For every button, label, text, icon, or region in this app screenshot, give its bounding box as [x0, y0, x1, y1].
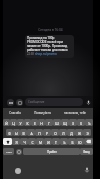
- staticText: Я: [15, 140, 18, 144]
- staticText: 22:38: [27, 52, 34, 56]
- staticText: Н: [40, 121, 43, 125]
- staticText: Сегодня в 16:04: [38, 28, 63, 32]
- staticText: В: [22, 131, 25, 135]
- staticText: Щ: [63, 121, 67, 125]
- button[interactable]: Б: [68, 138, 76, 145]
- staticText: Б: [71, 140, 74, 144]
- staticText: Пожалуйста: [34, 111, 51, 115]
- staticText: Ч: [23, 140, 26, 144]
- button[interactable]: Home: [15, 168, 21, 174]
- staticText: Пробел: [47, 150, 57, 154]
- staticText: К: [26, 121, 29, 125]
- staticText: Ввод: [83, 150, 90, 154]
- button[interactable]: Спасибо: [3, 108, 27, 118]
- staticText: Е: [34, 121, 36, 125]
- staticText: П: [38, 131, 41, 135]
- button[interactable]: Ю: [76, 138, 84, 145]
- button[interactable]: Д: [67, 129, 75, 136]
- button[interactable]: Пожалуйста: [27, 108, 57, 118]
- button[interactable]: Ь: [60, 138, 68, 145]
- button[interactable]: Пробел: [23, 148, 80, 155]
- button[interactable]: Gallery: [16, 99, 23, 106]
- staticText: Э: [86, 131, 89, 135]
- staticText: Промокод на 100р PROMOCODE на всё при за…: [27, 36, 72, 52]
- button[interactable]: Shift: [3, 138, 12, 145]
- button[interactable]: Е: [31, 119, 38, 126]
- staticText: shop.ru/promo: [35, 52, 57, 56]
- staticText: М: [39, 140, 42, 144]
- button[interactable]: Р: [43, 129, 51, 136]
- staticText: Спасибо: [9, 111, 21, 115]
- staticText: Ь: [63, 140, 66, 144]
- button[interactable]: В: [20, 129, 27, 136]
- button[interactable]: Backspace: [84, 138, 93, 145]
- staticText: И: [47, 140, 50, 144]
- button[interactable]: ?123: [3, 148, 14, 155]
- button[interactable]: Щ: [61, 119, 69, 126]
- button[interactable]: З: [69, 119, 77, 126]
- button[interactable]: Сообщение: [25, 98, 83, 106]
- button[interactable]: Ы: [13, 129, 20, 136]
- staticText: Ы: [15, 131, 18, 135]
- button[interactable]: Э: [83, 129, 91, 136]
- button[interactable]: Т: [52, 138, 60, 145]
- staticText: Ц: [12, 121, 15, 125]
- staticText: Ю: [78, 140, 82, 144]
- button[interactable]: Ф: [6, 129, 13, 136]
- button[interactable]: Camera: [7, 99, 14, 106]
- button[interactable]: Й: [3, 119, 10, 126]
- button[interactable]: Ш: [53, 119, 61, 126]
- button[interactable]: Промокод на 100р PROMOCODE на всё при за…: [25, 35, 74, 58]
- staticText: ?123: [6, 150, 12, 153]
- button[interactable]: Voice message: [85, 99, 92, 106]
- button[interactable]: Ц: [10, 119, 17, 126]
- button[interactable]: Х: [77, 119, 85, 126]
- button[interactable]: Ввод: [80, 148, 93, 155]
- button[interactable]: Г: [45, 119, 53, 126]
- staticText: С: [31, 140, 34, 144]
- staticText: У: [19, 121, 22, 125]
- staticText: Й: [5, 121, 8, 125]
- staticText: Г: [48, 121, 50, 125]
- button[interactable]: Л: [59, 129, 67, 136]
- button[interactable]: Voice input: [83, 166, 90, 173]
- staticText: Р: [46, 131, 48, 135]
- button[interactable]: Н: [38, 119, 45, 126]
- staticText: З: [72, 121, 74, 125]
- staticText: Х: [80, 121, 82, 125]
- button[interactable]: Ъ: [85, 119, 93, 126]
- staticText: Л: [62, 131, 65, 135]
- staticText: Ъ: [88, 121, 91, 125]
- button[interactable]: насколько, тебе: [57, 108, 93, 118]
- button[interactable]: У: [17, 119, 24, 126]
- button[interactable]: А: [27, 129, 35, 136]
- staticText: насколько, тебе: [64, 111, 86, 115]
- staticText: А: [30, 131, 33, 135]
- staticText: Ж: [78, 131, 81, 135]
- button[interactable]: С: [28, 138, 36, 145]
- staticText: Т: [55, 140, 57, 144]
- button[interactable]: К: [24, 119, 31, 126]
- staticText: О: [54, 131, 57, 135]
- button[interactable]: М: [36, 138, 44, 145]
- staticText: Д: [70, 131, 73, 135]
- button[interactable]: Emoji: [14, 148, 23, 155]
- staticText: Сообщение: [28, 100, 45, 104]
- button[interactable]: Ж: [75, 129, 83, 136]
- button[interactable]: И: [44, 138, 52, 145]
- button[interactable]: О: [51, 129, 59, 136]
- staticText: Ш: [55, 121, 59, 125]
- button[interactable]: Ч: [20, 138, 28, 145]
- button[interactable]: Я: [12, 138, 20, 145]
- staticText: Ф: [8, 131, 11, 135]
- button[interactable]: П: [35, 129, 43, 136]
